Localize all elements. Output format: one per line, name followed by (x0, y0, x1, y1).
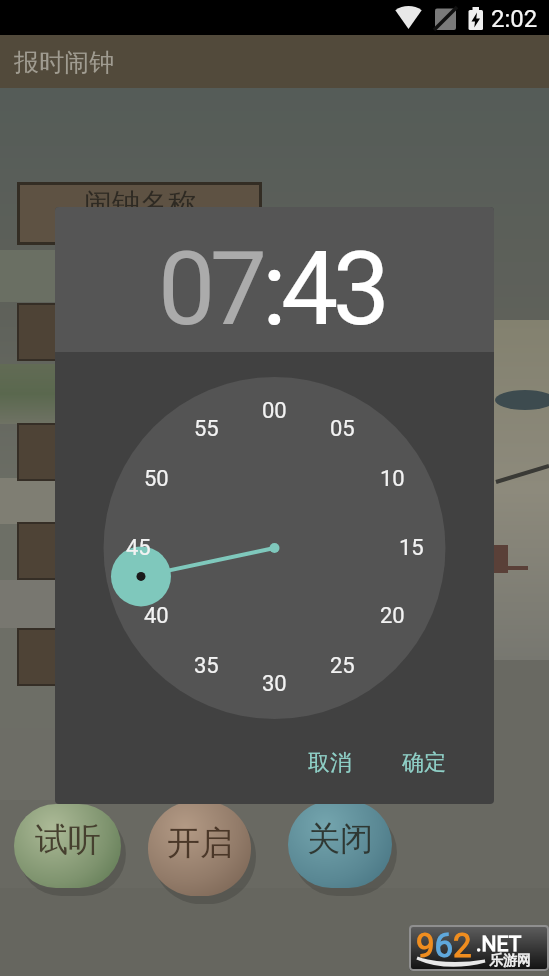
button[interactable]: 取消 (280, 738, 380, 788)
staticText: 试听 (35, 819, 101, 861)
button[interactable]: 确定 (374, 738, 474, 788)
staticText: 45 (126, 535, 151, 561)
staticText: 开启 (167, 822, 233, 864)
staticText: 30 (262, 671, 287, 697)
staticText: 07 (158, 229, 262, 349)
staticText: .NET (476, 932, 522, 957)
staticText: 40 (144, 603, 169, 629)
staticText: 关闭 (307, 818, 373, 860)
button[interactable]: 开启 (148, 801, 251, 896)
staticText: 报时闹钟 (14, 47, 114, 78)
staticText: 取消 (308, 749, 352, 777)
staticText: 962 (416, 926, 472, 965)
staticText: 15 (399, 535, 424, 561)
staticText: 乐游网 (489, 952, 531, 970)
staticText: 25 (330, 653, 355, 679)
staticText: :43 (262, 229, 385, 349)
staticText: 20 (380, 603, 405, 629)
staticText: 50 (144, 466, 169, 492)
staticText: 确定 (402, 749, 446, 777)
staticText: 10 (380, 466, 405, 492)
staticText: 55 (194, 416, 219, 442)
staticText: 35 (194, 653, 219, 679)
staticText: 2:02 (491, 5, 538, 33)
button[interactable]: 试听 (14, 804, 121, 888)
staticText: 闹钟名称 (84, 186, 196, 221)
staticText: 05 (330, 416, 355, 442)
staticText: 00 (262, 398, 287, 424)
button[interactable]: 关闭 (288, 801, 392, 888)
